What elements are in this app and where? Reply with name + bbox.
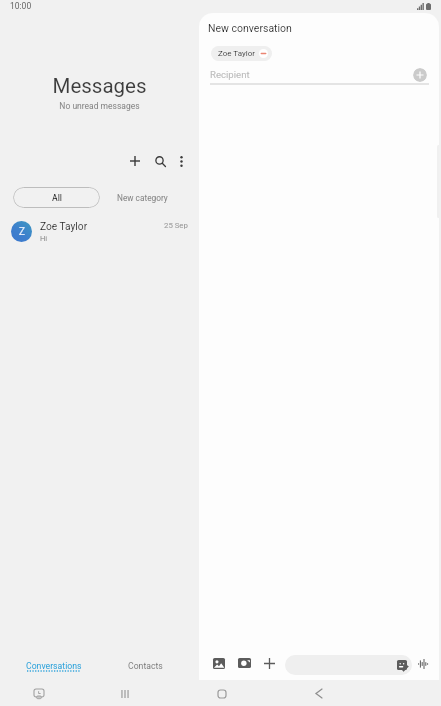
staticText: All [52,193,62,203]
button[interactable]: More options [169,149,194,174]
staticText: Recipient [210,69,250,80]
button[interactable]: Zoe Taylor [211,46,272,61]
button[interactable]: New category [107,187,178,208]
button[interactable]: Gallery [207,651,231,675]
button[interactable]: Add recipient [413,68,427,82]
staticText: Zoe Taylor [40,221,88,233]
button[interactable]: Voice message [412,653,434,675]
button[interactable]: Search [148,149,173,174]
button[interactable]: New conversation [122,148,147,173]
staticText: New category [117,193,168,203]
staticText: Hi [40,234,48,243]
button[interactable]: Contacts [110,661,180,681]
button[interactable]: Z [0,216,199,248]
button[interactable]: Recent apps [112,681,137,706]
staticText: Conversations [26,661,82,671]
staticText: Zoe Taylor [218,49,255,58]
button[interactable]: Back [306,681,331,706]
button[interactable]: Stickers [397,660,407,670]
button[interactable]: Stickers [285,655,412,675]
staticText: Messages [0,74,199,98]
staticText: 25 Sep [164,221,188,230]
button[interactable]: Conversations [5,652,103,678]
staticText: Z [19,226,25,238]
button[interactable]: Camera [232,651,256,675]
staticText: 10:00 [10,1,32,11]
button[interactable]: All [13,187,100,208]
button[interactable]: Home [209,681,234,706]
button[interactable]: Screenshot [26,681,51,706]
staticText: Contacts [128,661,163,671]
staticText: New conversation [208,22,292,34]
button[interactable]: More attachments [257,651,281,675]
staticText: No unread messages [0,101,199,111]
